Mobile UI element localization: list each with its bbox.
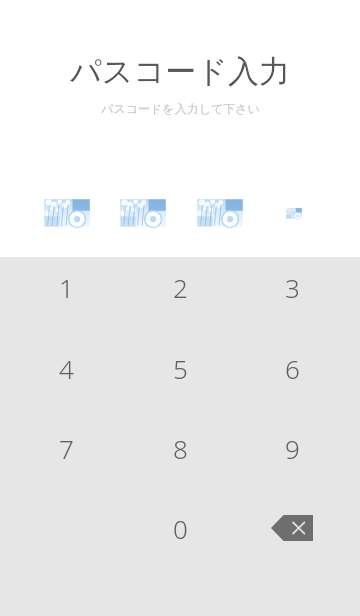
staticText: 6 [285,351,300,386]
button[interactable]: 0 [140,498,220,558]
staticText: 7 [59,431,74,466]
button[interactable]: 8 [140,418,220,478]
button[interactable]: 7 [26,418,106,478]
button[interactable]: 2 [140,257,220,317]
staticText: 2 [173,270,188,305]
staticText: 5 [173,351,188,386]
button[interactable]: 9 [252,418,332,478]
staticText: パスコードを入力して下さい [101,101,260,116]
button[interactable]: 4 [26,338,106,398]
staticText: 1 [59,270,74,305]
button[interactable]: Backspace [254,500,330,556]
button[interactable]: 5 [140,338,220,398]
staticText: 8 [173,431,188,466]
staticText: 0 [173,511,188,546]
staticText: 4 [59,351,74,386]
staticText: パスコード入力 [70,52,290,91]
staticText: 9 [285,431,300,466]
staticText: 3 [285,270,300,305]
button[interactable]: 1 [26,257,106,317]
button[interactable]: 6 [252,338,332,398]
button[interactable]: 3 [252,257,332,317]
